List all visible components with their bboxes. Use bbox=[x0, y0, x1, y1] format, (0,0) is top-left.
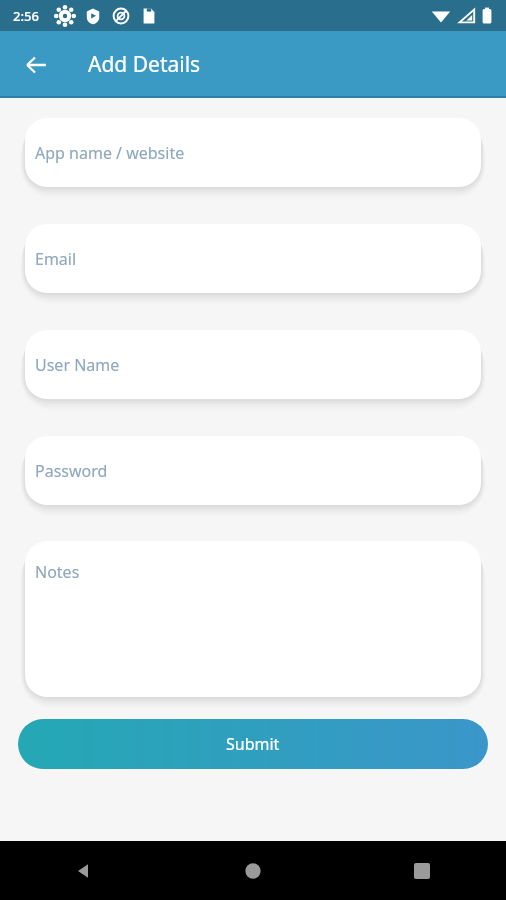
staticText: Email bbox=[35, 248, 77, 270]
button[interactable]: Password bbox=[25, 436, 481, 505]
button[interactable]: Home bbox=[168, 841, 337, 900]
button[interactable]: Back bbox=[14, 43, 58, 87]
staticText: Submit bbox=[226, 733, 280, 755]
staticText: 2:56 bbox=[13, 7, 39, 25]
staticText: Notes bbox=[35, 561, 80, 583]
staticText: App name / website bbox=[35, 142, 185, 164]
staticText: Password bbox=[35, 460, 108, 482]
staticText: User Name bbox=[35, 354, 120, 376]
button[interactable]: Back bbox=[0, 841, 168, 900]
button[interactable]: Submit bbox=[18, 719, 488, 769]
button[interactable]: App name / website bbox=[25, 118, 481, 187]
button[interactable]: User Name bbox=[25, 330, 481, 399]
button[interactable]: Recent apps bbox=[337, 841, 506, 900]
button[interactable]: Email bbox=[25, 224, 481, 293]
button[interactable]: Notes bbox=[25, 541, 481, 697]
staticText: Add Details bbox=[88, 50, 201, 79]
